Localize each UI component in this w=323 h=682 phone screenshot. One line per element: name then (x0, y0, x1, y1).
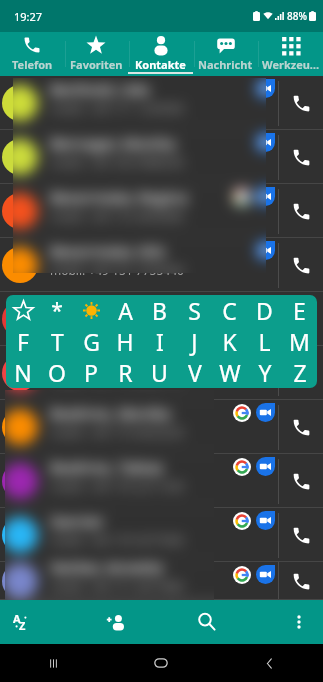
button[interactable]: Bockhorst, Udo (0, 292, 323, 346)
button[interactable]: Anrufen (279, 184, 323, 238)
button[interactable]: Bernager, Monika (0, 130, 323, 184)
button[interactable]: Anrufen (279, 400, 323, 454)
button[interactable]: Telefon (0, 32, 64, 76)
button[interactable]: B (142, 295, 177, 326)
button[interactable]: Boehme, Monika (0, 400, 323, 454)
button[interactable]: Kontakte (128, 32, 193, 76)
button[interactable]: T (40, 326, 74, 357)
button[interactable]: Anrufen (279, 292, 323, 346)
button[interactable]: Nachricht (193, 32, 258, 76)
button[interactable]: N (6, 357, 40, 388)
button[interactable]: Anrufen (279, 238, 323, 292)
button[interactable]: P (74, 357, 108, 388)
button[interactable]: I (142, 326, 177, 357)
button[interactable]: Anrufen (279, 508, 323, 562)
button[interactable]: Bockhorst, Udo (0, 292, 323, 346)
button[interactable]: J (177, 326, 212, 357)
button[interactable]: S (177, 295, 212, 326)
button[interactable]: Boehme, Manfred (0, 346, 323, 400)
button[interactable]: H (108, 326, 142, 357)
button[interactable]: Berthold, Udo (0, 76, 323, 130)
button[interactable]: Bevermeier, Regina (0, 184, 323, 238)
button[interactable]: D (247, 295, 282, 326)
button[interactable]: Gerber, Annette (0, 562, 323, 600)
staticText: H (116, 326, 134, 357)
button[interactable]: Sortieren (1, 600, 45, 644)
button[interactable]: U (142, 357, 177, 388)
button[interactable]: Boehme, Tobias (0, 454, 323, 508)
button[interactable]: A (108, 295, 142, 326)
button[interactable]: * (40, 295, 74, 326)
button[interactable]: Anrufen (279, 400, 323, 454)
button[interactable]: Anrufen (279, 346, 323, 400)
button[interactable]: Werkzeu… (258, 32, 323, 76)
button[interactable]: Boehme, Manfred (0, 346, 323, 400)
button[interactable]: Anrufen (279, 454, 323, 508)
button[interactable]: Anrufen (279, 562, 323, 600)
button[interactable]: F (6, 326, 40, 357)
button[interactable]: Anrufen (279, 346, 323, 400)
button[interactable]: Anrufen (279, 562, 323, 600)
button[interactable]: Gerber, Annette (0, 562, 323, 600)
button[interactable]: Anrufen (279, 508, 323, 562)
button[interactable]: L (247, 326, 282, 357)
button[interactable]: Letzte Apps (0, 644, 107, 682)
button[interactable]: Y (247, 357, 282, 388)
button[interactable]: Boehme, Monika (0, 400, 323, 454)
button[interactable]: Bevermeier, Regina (0, 184, 323, 238)
button[interactable] (6, 295, 40, 326)
button[interactable]: Anrufen (279, 508, 323, 562)
button[interactable]: Startbildschirm (107, 644, 215, 682)
button[interactable]: Mehr Optionen (277, 600, 321, 644)
button[interactable]: Zurück (215, 644, 323, 682)
button[interactable]: Boehme, Monika (0, 400, 323, 454)
button[interactable]: Anrufen (279, 76, 323, 130)
button[interactable]: Garnier (0, 508, 323, 562)
button[interactable]: Anrufen (279, 76, 323, 130)
button[interactable]: Anrufen (279, 454, 323, 508)
button[interactable]: Anrufen (279, 184, 323, 238)
button[interactable]: Gerber, Annette (0, 562, 323, 600)
button[interactable]: W (212, 357, 247, 388)
button[interactable]: E (282, 295, 317, 326)
button[interactable]: Bernager, Monika (0, 130, 323, 184)
button[interactable]: Berthold, Udo (0, 76, 323, 130)
button[interactable]: Boehme, Manfred (0, 346, 323, 400)
button[interactable]: Kontakt hinzufügen (94, 600, 138, 644)
button[interactable]: M (282, 326, 317, 357)
button[interactable]: Anrufen (279, 76, 323, 130)
button[interactable]: Berthold, Udo (0, 76, 323, 130)
button[interactable]: Anrufen (279, 292, 323, 346)
button[interactable]: Bevermeier, Nils (0, 238, 323, 292)
button[interactable]: Anrufen (279, 130, 323, 184)
button[interactable]: Favoriten (64, 32, 128, 76)
button[interactable]: Z (282, 357, 317, 388)
button[interactable]: Anrufen (279, 130, 323, 184)
button[interactable]: Anrufen (279, 562, 323, 600)
button[interactable]: C (212, 295, 247, 326)
button[interactable]: Anrufen (279, 400, 323, 454)
button[interactable]: Anrufen (279, 346, 323, 400)
button[interactable]: Anrufen (279, 454, 323, 508)
button[interactable]: Boehme, Tobias (0, 454, 323, 508)
button[interactable]: Suchen (185, 600, 229, 644)
button[interactable]: Anrufen (279, 292, 323, 346)
button[interactable]: Anrufen (279, 184, 323, 238)
button[interactable]: G (74, 326, 108, 357)
button[interactable]: Bevermeier, Regina (0, 184, 323, 238)
button[interactable]: Garnier (0, 508, 323, 562)
button[interactable]: Bernager, Monika (0, 130, 323, 184)
button[interactable]: Anrufen (279, 238, 323, 292)
button[interactable]: O (40, 357, 74, 388)
button[interactable]: Bevermeier, Nils (0, 238, 323, 292)
button[interactable]: R (108, 357, 142, 388)
button[interactable]: Anrufen (279, 238, 323, 292)
button[interactable]: Boehme, Tobias (0, 454, 323, 508)
button[interactable]: K (212, 326, 247, 357)
button[interactable]: Bockhorst, Udo (0, 292, 323, 346)
button[interactable]: V (177, 357, 212, 388)
button[interactable]: Anrufen (279, 130, 323, 184)
button[interactable] (74, 295, 108, 326)
button[interactable]: Garnier (0, 508, 323, 562)
button[interactable]: Bevermeier, Nils (0, 238, 323, 292)
